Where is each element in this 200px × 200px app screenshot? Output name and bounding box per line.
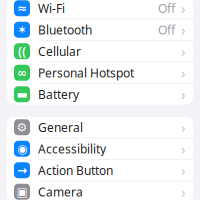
staticText: ›	[181, 20, 186, 39]
button[interactable]: ▬	[7, 84, 193, 105]
staticText: Camera	[38, 184, 83, 200]
staticText: ›	[181, 0, 186, 18]
staticText: Battery	[38, 86, 79, 102]
staticText: ›	[181, 117, 186, 137]
staticText: Cellular	[38, 43, 81, 59]
staticText: Personal Hotspot	[38, 65, 134, 81]
staticText: ›	[181, 182, 186, 200]
staticText: ∞	[17, 66, 27, 79]
staticText: ▬	[16, 87, 27, 101]
staticText: Action Button	[38, 162, 113, 178]
button[interactable]: ∞	[7, 62, 193, 84]
button[interactable]: ((	[7, 41, 193, 62]
staticText: ⚙	[16, 120, 27, 134]
staticText: General	[38, 119, 83, 135]
staticText: ◉	[17, 142, 27, 155]
button[interactable]: →	[7, 160, 193, 181]
staticText: ›	[181, 63, 186, 82]
staticText: ≈	[17, 1, 27, 15]
staticText: Accessibility	[38, 141, 106, 157]
staticText: ›	[181, 41, 186, 61]
staticText: ›	[181, 160, 186, 180]
button[interactable]: ✶	[7, 19, 193, 41]
staticText: Wi-Fi	[38, 0, 65, 16]
button[interactable]: ▣	[7, 181, 193, 200]
button[interactable]: ⚙	[7, 117, 193, 138]
button[interactable]: ◉	[7, 138, 193, 160]
staticText: ›	[181, 84, 186, 104]
staticText: ▣	[16, 185, 27, 198]
button[interactable]: ≈	[7, 0, 193, 19]
staticText: ›	[181, 139, 186, 158]
staticText: Off	[158, 22, 175, 38]
staticText: Bluetooth	[38, 22, 92, 38]
staticText: Off	[158, 0, 175, 16]
staticText: ((	[18, 43, 26, 59]
staticText: →	[17, 163, 27, 177]
staticText: ✶	[17, 23, 27, 36]
